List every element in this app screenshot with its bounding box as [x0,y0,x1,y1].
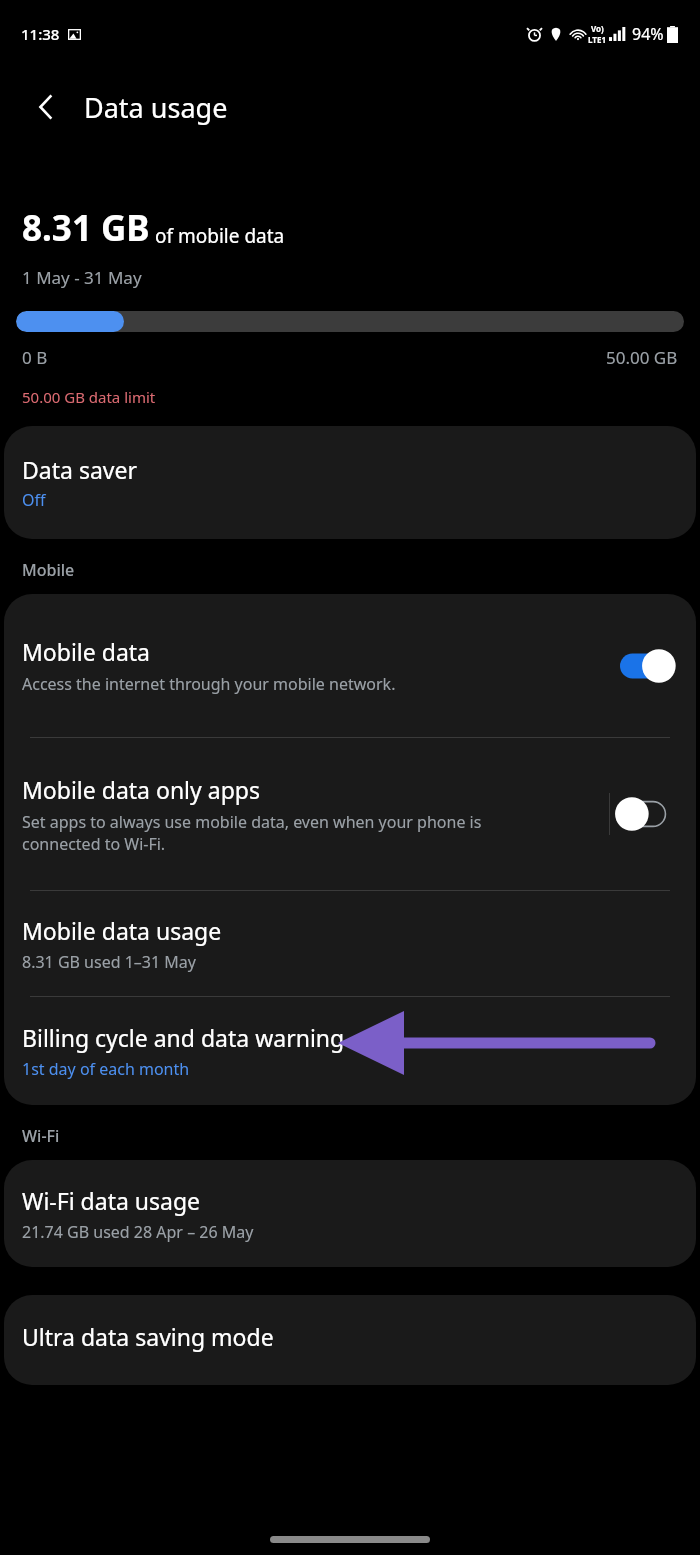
staticText: Billing cycle and data warning [22,1022,345,1053]
staticText: LTE1 [588,34,606,45]
button[interactable]: Mobile data only apps toggle, off [620,794,674,834]
button[interactable]: Mobile data toggle, on [620,646,674,686]
button[interactable]: Billing cycle and data warning [4,997,696,1105]
button[interactable]: Mobile data usage [4,891,696,996]
staticText: Mobile data [22,636,150,667]
staticText: Ultra data saving mode [22,1321,274,1352]
button[interactable]: Mobile data only apps [4,738,696,890]
staticText: of mobile data [155,223,285,249]
staticText: 50.00 GB [606,346,678,369]
staticText: Set apps to always use mobile data, even… [22,811,529,855]
staticText: 50.00 GB data limit [22,387,156,407]
button[interactable]: Data saver [4,426,696,539]
button[interactable]: Wi-Fi data usage [4,1160,696,1267]
button[interactable]: Back [24,85,68,129]
staticText: 94% [632,23,664,45]
staticText: Off [22,489,46,511]
staticText: 0 B [22,346,48,369]
staticText: Data saver [22,454,137,485]
staticText: Wi-Fi data usage [22,1185,201,1216]
staticText: 1st day of each month [22,1058,190,1080]
staticText: 21.74 GB used 28 Apr – 26 May [22,1221,254,1243]
staticText: 11:38 [21,24,60,44]
button[interactable]: Ultra data saving mode [4,1295,696,1385]
staticText: Wi-Fi [22,1125,60,1147]
staticText: Vo) [591,23,604,34]
staticText: 8.31 GB [22,204,150,252]
staticText: Mobile data usage [22,915,222,946]
staticText: Data usage [84,89,228,126]
button[interactable]: Mobile data [4,594,696,737]
staticText: Mobile [22,559,75,581]
staticText: 1 May - 31 May [22,266,142,289]
staticText: Access the internet through your mobile … [22,673,396,695]
staticText: 8.31 GB used 1–31 May [22,951,196,973]
staticText: Mobile data only apps [22,774,260,805]
